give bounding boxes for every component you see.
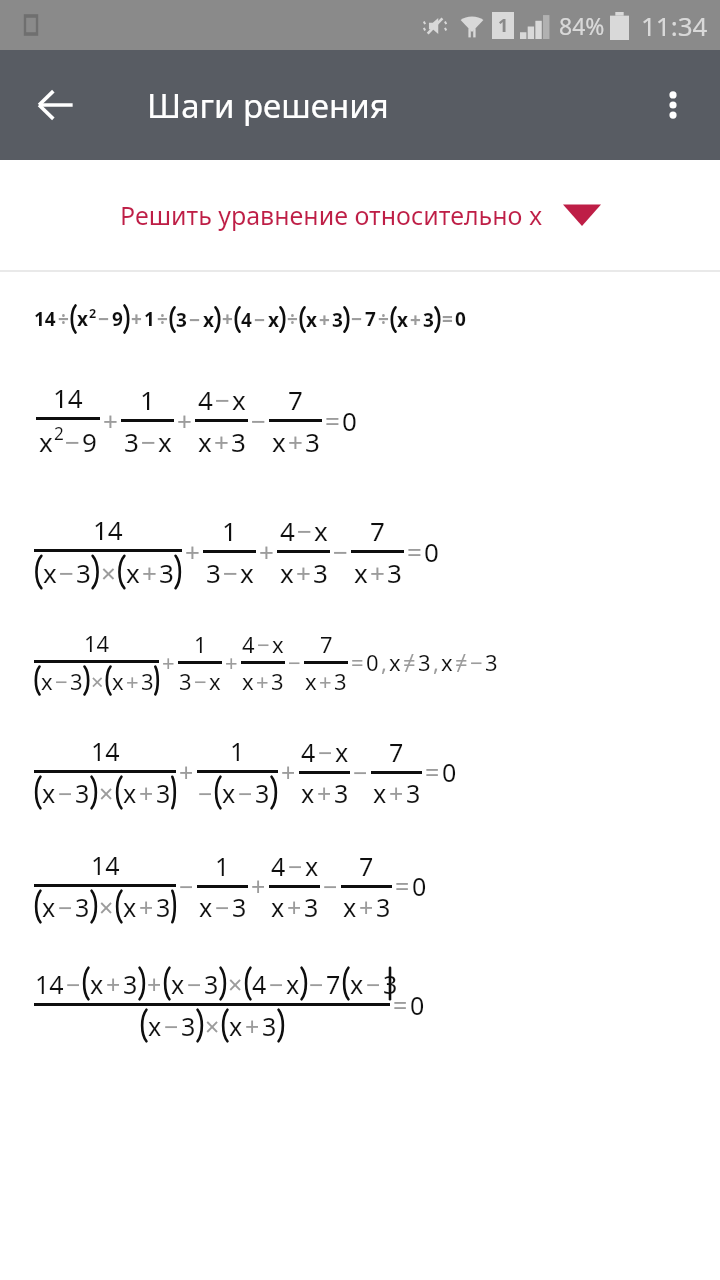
staticText: x [126,555,140,590]
staticText: − [187,967,202,1001]
staticText: + [162,647,175,677]
staticText: × [91,666,104,696]
staticText: x [286,967,300,1001]
staticText: 84% [559,10,605,41]
button[interactable]: More options [640,72,706,138]
staticText: x [42,776,56,810]
staticText: 1 [140,382,155,417]
staticText: 1 [215,849,230,883]
staticText: 3 [75,890,90,924]
staticText: x [148,1009,162,1043]
staticText: × [99,776,114,810]
button[interactable]: Back [20,70,90,140]
staticText: − [333,534,348,569]
staticText: 3 [156,776,171,810]
button[interactable]: 14 [0,512,720,590]
staticText: + [287,890,302,924]
staticText: x [199,890,213,924]
staticText: x [242,666,254,696]
staticText: − [189,307,201,333]
staticText: − [238,776,253,810]
staticText: x [209,666,221,696]
staticText: + [389,776,404,810]
staticText: x [373,776,387,810]
staticText: 14 [84,628,110,658]
staticText: 4 [241,307,252,333]
staticText: − [58,776,73,810]
staticText: x [198,424,212,459]
staticText: x [301,776,315,810]
staticText: 3 [334,776,349,810]
staticText: 4 [280,513,295,548]
staticText: − [257,629,270,659]
staticText: 3 [231,424,246,459]
staticText: 3 [156,890,171,924]
staticText: − [351,306,363,332]
staticText: − [254,307,266,333]
staticText: 3 [334,666,347,696]
button[interactable]: 14 [0,380,720,460]
staticText: 3 [406,776,421,810]
staticText: x [90,967,104,1001]
staticText: + [281,755,296,789]
staticText: x [123,890,137,924]
staticText: − [179,869,194,903]
staticText: 3 [255,776,270,810]
button[interactable]: 14 [0,848,720,924]
staticText: × [205,1009,220,1043]
staticText: + [103,403,118,438]
staticText: 3 [383,967,389,1001]
staticText: = [442,306,453,332]
staticText: 3 [485,647,498,677]
staticText: x [240,555,254,590]
staticText: − [309,967,324,1001]
button[interactable]: Решить уравнение относительно x [0,160,720,270]
staticText: x [343,890,357,924]
staticText: ≠ [403,647,416,677]
staticText: + [222,306,233,332]
staticText: ÷ [157,306,168,332]
staticText: x [39,424,53,459]
staticText: + [142,555,157,590]
staticText: x [229,1009,243,1043]
staticText: x [350,967,364,1001]
staticText: − [65,424,80,459]
staticText: ÷ [287,306,298,332]
button[interactable]: 14 [0,304,720,334]
staticText: x [158,424,172,459]
staticText: + [139,776,154,810]
staticText: − [58,890,73,924]
staticText: 2 [89,305,97,322]
staticText: × [99,890,114,924]
staticText: , [381,647,387,677]
staticText: − [194,666,207,696]
staticText: x [305,849,319,883]
staticText: − [353,755,368,789]
staticText: − [164,1009,179,1043]
staticText: 3 [75,776,90,810]
staticText: 0 [455,306,466,332]
staticText: x [41,666,53,696]
staticText: = [325,403,340,438]
staticText: 4 [198,382,213,417]
staticText: 4 [271,849,286,883]
staticText: 0 [342,403,357,438]
staticText: + [319,666,332,696]
staticText: 1 [144,306,155,332]
staticText: − [297,513,312,548]
staticText: 3 [204,967,219,1001]
button[interactable]: 14 [0,628,720,696]
staticText: x [232,382,246,417]
staticText: 4 [252,967,267,1001]
staticText: 3 [176,307,187,333]
staticText: x [203,307,214,333]
staticText: 3 [206,555,221,590]
staticText: + [106,967,121,1001]
button[interactable]: 14 [0,734,720,810]
staticText: x [43,555,57,590]
staticText: 7 [389,735,404,769]
button[interactable]: 14 [0,966,720,1043]
staticText: − [318,735,333,769]
staticText: 3 [124,424,139,459]
staticText: 0 [424,534,439,569]
